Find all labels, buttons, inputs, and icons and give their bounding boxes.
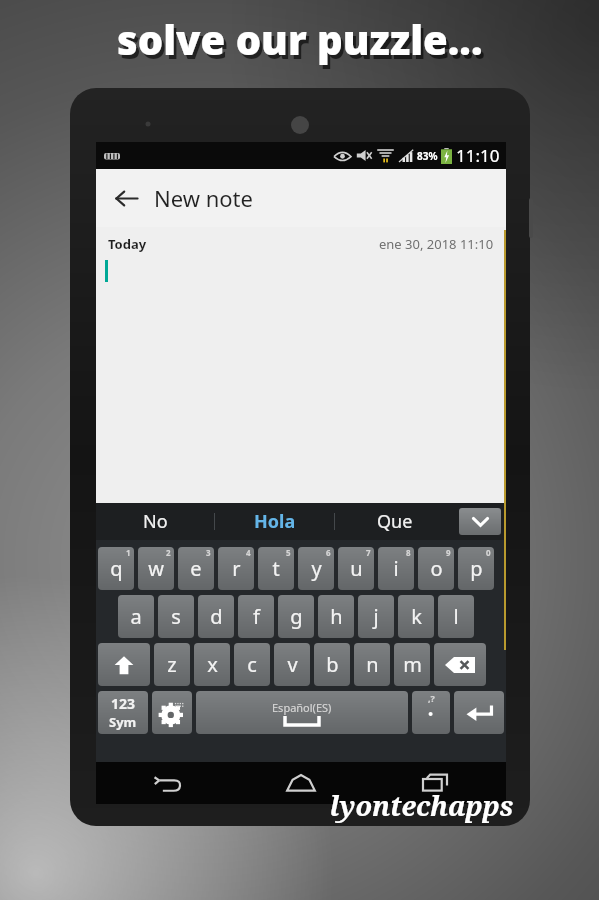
button[interactable]: n bbox=[354, 643, 390, 686]
button[interactable]: Enter bbox=[454, 691, 504, 734]
button[interactable]: x bbox=[194, 643, 230, 686]
staticText: b bbox=[326, 651, 339, 678]
button[interactable]: p bbox=[458, 547, 494, 590]
staticText: 1 bbox=[126, 547, 131, 558]
button[interactable]: z bbox=[154, 643, 190, 686]
staticText: s bbox=[171, 603, 181, 630]
button[interactable]: Que bbox=[335, 503, 454, 540]
staticText: p bbox=[470, 555, 483, 582]
button[interactable]: Expand suggestions bbox=[459, 508, 501, 535]
staticText: q bbox=[110, 555, 123, 582]
button[interactable]: u bbox=[338, 547, 374, 590]
button[interactable]: m bbox=[394, 643, 430, 686]
staticText: 83% bbox=[417, 149, 438, 163]
staticText: 9 bbox=[446, 547, 451, 558]
staticText: f bbox=[253, 603, 260, 630]
button[interactable]: e bbox=[178, 547, 214, 590]
button[interactable]: i bbox=[378, 547, 414, 590]
staticText: 3 bbox=[206, 547, 211, 558]
staticText: 2 bbox=[166, 547, 171, 558]
button[interactable]: No bbox=[96, 503, 214, 540]
staticText: a bbox=[130, 603, 142, 630]
staticText: 8 bbox=[406, 547, 411, 558]
staticText: w bbox=[148, 555, 164, 582]
staticText: Español(ES) bbox=[272, 700, 332, 715]
staticText: solve our puzzle... bbox=[117, 12, 483, 66]
button[interactable]: Period bbox=[412, 691, 450, 734]
button[interactable]: c bbox=[234, 643, 270, 686]
button[interactable]: Keyboard settings bbox=[152, 691, 192, 734]
staticText: Sym bbox=[109, 713, 137, 731]
staticText: o bbox=[430, 555, 443, 582]
staticText: r bbox=[232, 555, 241, 582]
staticText: 6 bbox=[326, 547, 331, 558]
staticText: e bbox=[190, 555, 202, 582]
staticText: u bbox=[350, 555, 363, 582]
button[interactable]: r bbox=[218, 547, 254, 590]
button[interactable]: Home bbox=[273, 764, 329, 802]
button[interactable]: q bbox=[98, 547, 134, 590]
button[interactable]: f bbox=[238, 595, 274, 638]
staticText: solve our puzzle... bbox=[120, 16, 486, 70]
staticText: h bbox=[330, 603, 343, 630]
button[interactable]: Backspace bbox=[434, 643, 486, 686]
button[interactable]: y bbox=[298, 547, 334, 590]
staticText: z bbox=[167, 651, 177, 678]
staticText: New note bbox=[154, 183, 253, 213]
button[interactable]: w bbox=[138, 547, 174, 590]
staticText: k bbox=[411, 603, 422, 630]
button[interactable]: Shift bbox=[98, 643, 150, 686]
button[interactable]: o bbox=[418, 547, 454, 590]
button[interactable]: Back bbox=[102, 174, 150, 222]
button[interactable]: s bbox=[158, 595, 194, 638]
staticText: 11:10 bbox=[456, 144, 500, 167]
button[interactable]: k bbox=[398, 595, 434, 638]
staticText: i bbox=[393, 555, 399, 582]
staticText: 7 bbox=[366, 547, 371, 558]
button[interactable]: Space bbox=[196, 691, 408, 734]
staticText: g bbox=[290, 603, 303, 630]
staticText: n bbox=[366, 651, 379, 678]
staticText: Today bbox=[108, 235, 147, 253]
staticText: d bbox=[210, 603, 223, 630]
button[interactable]: Recents bbox=[407, 764, 463, 802]
staticText: m bbox=[403, 651, 422, 678]
staticText: y bbox=[311, 555, 322, 582]
button[interactable]: Hola bbox=[215, 503, 334, 540]
button[interactable]: l bbox=[438, 595, 474, 638]
staticText: 123 bbox=[111, 694, 136, 713]
button[interactable]: g bbox=[278, 595, 314, 638]
staticText: j bbox=[373, 603, 379, 630]
staticText: 4 bbox=[246, 547, 251, 558]
staticText: x bbox=[207, 651, 218, 678]
staticText: 5 bbox=[286, 547, 291, 558]
staticText: ,? bbox=[428, 692, 435, 704]
button[interactable]: b bbox=[314, 643, 350, 686]
button[interactable]: Back bbox=[139, 764, 195, 802]
staticText: Hola bbox=[254, 509, 296, 534]
button[interactable]: 123 bbox=[98, 691, 148, 734]
button[interactable]: d bbox=[198, 595, 234, 638]
staticText: No bbox=[143, 509, 168, 534]
staticText: t bbox=[272, 555, 280, 582]
button[interactable]: t bbox=[258, 547, 294, 590]
staticText: c bbox=[247, 651, 257, 678]
staticText: Que bbox=[377, 509, 413, 534]
staticText: 0 bbox=[486, 547, 491, 558]
staticText: l bbox=[453, 603, 459, 630]
staticText: v bbox=[287, 651, 298, 678]
button[interactable]: a bbox=[118, 595, 154, 638]
button[interactable]: v bbox=[274, 643, 310, 686]
button[interactable]: h bbox=[318, 595, 354, 638]
staticText: lyontechapps bbox=[330, 787, 514, 824]
staticText: ene 30, 2018 11:10 bbox=[379, 235, 494, 253]
button[interactable]: j bbox=[358, 595, 394, 638]
